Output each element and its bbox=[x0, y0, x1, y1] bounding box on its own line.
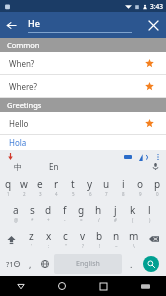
button[interactable]: g bbox=[73, 200, 90, 226]
staticText: Hello bbox=[9, 118, 141, 129]
button[interactable]: Keyboard bbox=[124, 276, 166, 296]
staticText: " bbox=[65, 243, 67, 249]
button[interactable]: v bbox=[74, 226, 91, 252]
button[interactable]: Backspace bbox=[142, 226, 166, 252]
button[interactable]: Where? bbox=[0, 75, 166, 97]
button[interactable]: Hide keyboard bbox=[5, 151, 16, 162]
button[interactable]: e bbox=[32, 174, 48, 200]
button[interactable]: w bbox=[16, 174, 32, 200]
staticText: Common bbox=[7, 40, 40, 50]
button[interactable]: English bbox=[54, 254, 122, 274]
button[interactable]: n bbox=[108, 226, 125, 252]
staticText: b bbox=[96, 229, 103, 243]
button[interactable]: Favorite bbox=[141, 115, 157, 131]
button[interactable]: Back bbox=[0, 14, 22, 36]
button[interactable]: x bbox=[40, 226, 57, 252]
staticText: u bbox=[103, 177, 110, 191]
staticText: 3:43 bbox=[150, 2, 163, 11]
staticText: When? bbox=[9, 58, 141, 69]
button[interactable]: f bbox=[56, 200, 73, 226]
staticText: 1 bbox=[7, 191, 10, 197]
staticText: , bbox=[29, 258, 32, 270]
button[interactable]: u bbox=[98, 174, 115, 200]
staticText: + bbox=[47, 217, 50, 223]
button[interactable]: o bbox=[132, 174, 149, 200]
button[interactable]: Change language bbox=[37, 254, 52, 274]
button[interactable]: y bbox=[81, 174, 98, 200]
staticText: \ bbox=[133, 243, 135, 249]
button[interactable]: Favorite bbox=[141, 78, 157, 94]
staticText: ? bbox=[82, 243, 84, 249]
staticText: s bbox=[30, 203, 35, 217]
staticText: e bbox=[37, 177, 43, 191]
staticText: Where? bbox=[9, 81, 141, 92]
button[interactable]: z bbox=[23, 226, 40, 252]
button[interactable]: t bbox=[64, 174, 81, 200]
button[interactable]: h bbox=[90, 200, 107, 226]
staticText: @ bbox=[14, 217, 19, 223]
button[interactable]: More options bbox=[152, 151, 163, 162]
button[interactable]: En bbox=[36, 161, 72, 172]
staticText: 3 bbox=[39, 191, 42, 197]
staticText: c bbox=[63, 229, 68, 243]
staticText: h bbox=[95, 203, 102, 217]
staticText: 9 bbox=[139, 191, 142, 197]
staticText: l bbox=[148, 203, 151, 217]
staticText: ?1 bbox=[6, 259, 14, 269]
staticText: ( bbox=[132, 217, 134, 223]
staticText: = bbox=[80, 217, 83, 223]
button[interactable]: b bbox=[91, 226, 108, 252]
staticText: 6 bbox=[89, 191, 92, 197]
button[interactable]: Back bbox=[0, 276, 41, 296]
staticText: ~ bbox=[115, 243, 118, 249]
staticText: * bbox=[31, 217, 34, 223]
button[interactable]: r bbox=[48, 174, 64, 200]
staticText: . bbox=[130, 258, 133, 270]
button[interactable]: Search bbox=[138, 254, 164, 274]
button[interactable]: Recents bbox=[82, 276, 124, 296]
button[interactable]: l bbox=[141, 200, 158, 226]
button[interactable]: When? bbox=[0, 52, 166, 74]
button[interactable]: Favorite bbox=[141, 55, 157, 71]
staticText: y bbox=[87, 177, 93, 191]
staticText: 8 bbox=[122, 191, 125, 197]
staticText: 4 bbox=[55, 191, 58, 197]
staticText: ' bbox=[31, 243, 33, 249]
button[interactable]: Handwriting bbox=[122, 151, 133, 162]
button[interactable]: s bbox=[24, 200, 40, 226]
button[interactable]: , bbox=[23, 254, 37, 274]
button[interactable]: Hello bbox=[0, 112, 166, 134]
button[interactable]: ?1 bbox=[2, 254, 23, 274]
staticText: x bbox=[46, 229, 52, 243]
staticText: m bbox=[129, 229, 139, 243]
staticText: ! bbox=[99, 243, 101, 249]
button[interactable]: k bbox=[124, 200, 141, 226]
button[interactable]: a bbox=[8, 200, 24, 226]
button[interactable]: m bbox=[125, 226, 142, 252]
button[interactable]: Microphone bbox=[150, 161, 161, 172]
button[interactable]: Clear bbox=[143, 15, 163, 35]
staticText: 2 bbox=[23, 191, 26, 197]
staticText: p bbox=[154, 177, 161, 191]
button[interactable]: Home bbox=[41, 276, 82, 296]
button[interactable]: c bbox=[57, 226, 74, 252]
staticText: i bbox=[122, 177, 125, 191]
staticText: / bbox=[98, 217, 100, 223]
button[interactable]: i bbox=[115, 174, 132, 200]
staticText: - bbox=[64, 217, 66, 223]
button[interactable]: q bbox=[0, 174, 16, 200]
staticText: En bbox=[49, 161, 59, 172]
button[interactable]: Shift bbox=[0, 226, 23, 252]
staticText: n bbox=[113, 229, 120, 243]
button[interactable]: Voice bbox=[137, 151, 148, 162]
button[interactable]: . bbox=[124, 254, 138, 274]
staticText: a bbox=[13, 203, 19, 217]
button[interactable]: j bbox=[107, 200, 124, 226]
button[interactable]: p bbox=[149, 174, 166, 200]
button[interactable]: d bbox=[40, 200, 56, 226]
staticText: z bbox=[29, 229, 34, 243]
button[interactable]: Hola bbox=[0, 135, 166, 150]
staticText: 0 bbox=[156, 191, 159, 197]
button[interactable]: 中 bbox=[0, 161, 36, 172]
staticText: ) bbox=[149, 217, 151, 223]
